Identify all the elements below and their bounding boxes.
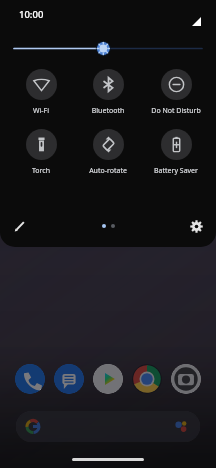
button[interactable]: Battery Saver <box>143 129 209 176</box>
staticText: Torch <box>8 166 74 176</box>
staticText: Wi-Fi <box>8 106 74 116</box>
staticText: 10:00 <box>19 8 44 21</box>
button[interactable]: Wi-Fi <box>8 69 74 116</box>
button[interactable]: Chrome <box>132 364 162 394</box>
staticText: Auto-rotate <box>75 166 141 176</box>
button[interactable]: Auto-rotate <box>75 129 141 176</box>
button[interactable]: Bluetooth <box>75 69 141 116</box>
button[interactable]: Brightness <box>0 41 216 56</box>
staticText: Battery Saver <box>143 166 209 176</box>
button[interactable]: Search <box>16 411 200 442</box>
button[interactable]: Play Store <box>93 364 123 394</box>
button[interactable]: Torch <box>8 129 74 176</box>
staticText: Do Not Disturb <box>143 106 209 116</box>
staticText: Bluetooth <box>75 106 141 116</box>
button[interactable]: Do Not Disturb <box>143 69 209 116</box>
button[interactable]: Settings <box>184 214 208 238</box>
button[interactable]: Camera <box>171 364 201 394</box>
button[interactable]: Messages <box>54 364 84 394</box>
button[interactable]: Edit tiles <box>8 214 32 238</box>
button[interactable]: Phone <box>15 364 45 394</box>
